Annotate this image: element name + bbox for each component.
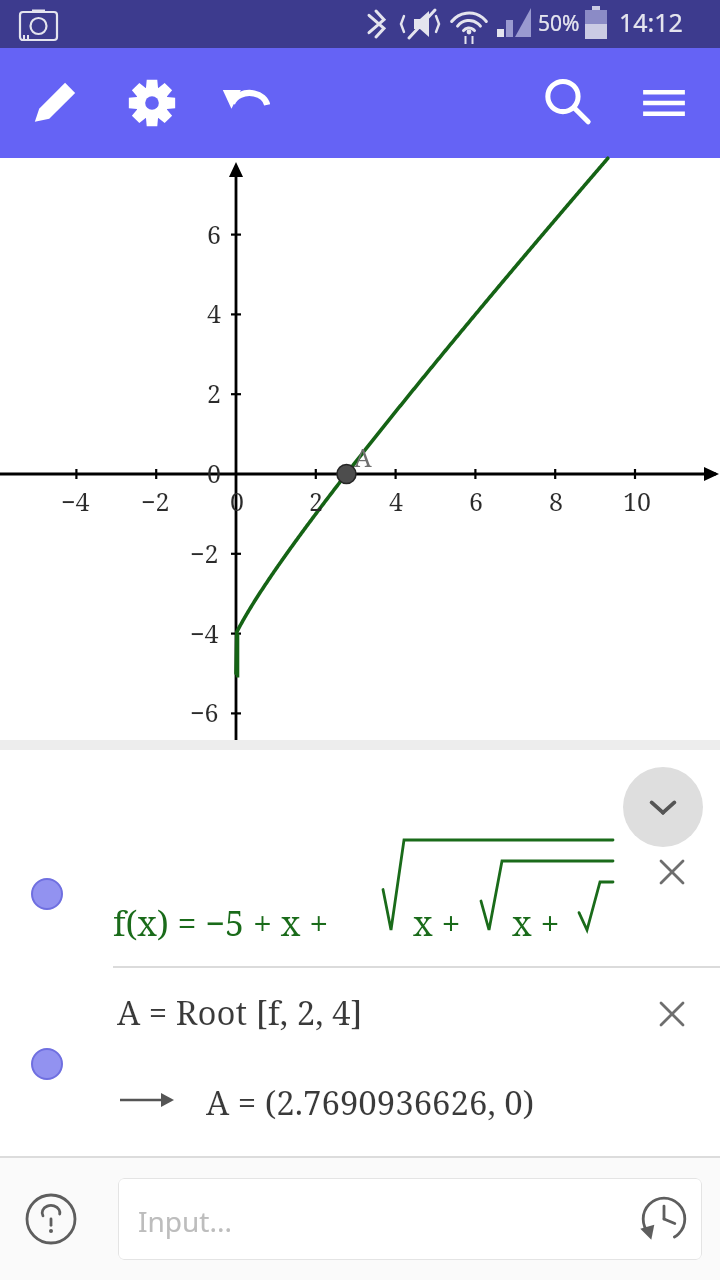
- staticText: 14:12: [619, 5, 683, 39]
- staticText: Input...: [138, 1202, 232, 1240]
- button[interactable]: Input...: [118, 1178, 702, 1260]
- staticText: 4: [207, 296, 221, 330]
- staticText: −6: [190, 695, 219, 729]
- button[interactable]: Undo: [212, 67, 284, 139]
- staticText: −2: [190, 536, 219, 570]
- staticText: 50%: [538, 9, 580, 38]
- staticText: 6: [207, 217, 221, 251]
- staticText: 4: [389, 484, 403, 518]
- staticText: x +: [512, 900, 560, 946]
- staticText: −4: [190, 616, 219, 650]
- button[interactable]: Search: [532, 67, 604, 139]
- staticText: 10: [623, 484, 651, 518]
- button[interactable]: Toggle f: [31, 878, 63, 910]
- staticText: f(x) = −5 + x +: [113, 900, 329, 946]
- button[interactable]: Edit: [19, 67, 91, 139]
- button[interactable]: Delete A: [650, 992, 694, 1036]
- button[interactable]: History: [638, 1193, 690, 1245]
- button[interactable]: −4: [0, 158, 720, 740]
- staticText: A: [354, 440, 372, 474]
- staticText: A = (2.7690936626, 0): [206, 1080, 535, 1125]
- staticText: 0: [207, 456, 221, 490]
- staticText: 6: [469, 484, 483, 518]
- button[interactable]: Collapse algebra view: [623, 767, 703, 847]
- button[interactable]: Toggle A: [31, 1048, 63, 1080]
- button[interactable]: Help: [25, 1193, 77, 1245]
- button[interactable]: Menu: [628, 67, 700, 139]
- staticText: −4: [61, 484, 90, 518]
- staticText: 2: [309, 484, 323, 518]
- staticText: −2: [141, 484, 170, 518]
- staticText: 0: [230, 484, 244, 518]
- button[interactable]: Settings: [116, 67, 188, 139]
- button[interactable]: A = Root [f, 2, 4]: [117, 990, 363, 1035]
- staticText: x +: [413, 900, 461, 946]
- button[interactable]: Delete f: [650, 850, 694, 894]
- staticText: 8: [549, 484, 563, 518]
- staticText: 2: [207, 376, 221, 410]
